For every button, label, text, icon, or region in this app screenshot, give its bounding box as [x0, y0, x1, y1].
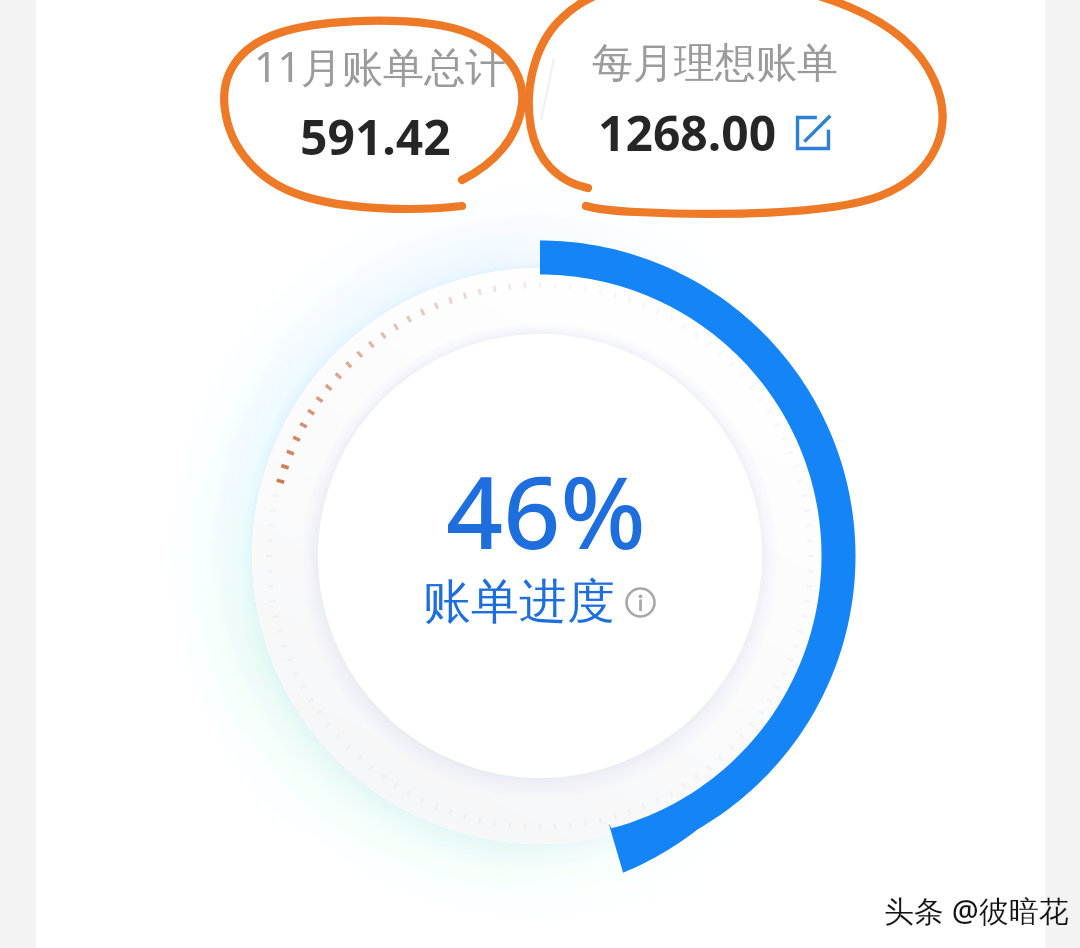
button[interactable]: Edit ideal budget: [795, 115, 831, 151]
button[interactable]: 每月理想账单: [592, 38, 892, 165]
staticText: 46%: [446, 442, 646, 578]
button[interactable]: 账单进度: [423, 572, 656, 632]
staticText: 头条 @彼暗花: [884, 890, 1069, 931]
staticText: 11月账单总计: [254, 38, 506, 94]
staticText: 591.42: [300, 104, 451, 169]
button[interactable]: 11月账单总计: [254, 38, 510, 169]
staticText: 账单进度: [423, 572, 615, 632]
staticText: 每月理想账单: [592, 38, 838, 90]
staticText: 1268.00: [598, 100, 777, 165]
button[interactable]: About bill progress: [625, 587, 656, 618]
